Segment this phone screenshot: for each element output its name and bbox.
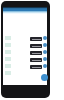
button[interactable]: Compose [41, 74, 48, 81]
button[interactable]: Avatar [43, 57, 47, 61]
button[interactable] [30, 65, 42, 69]
button[interactable]: Avatar [43, 64, 47, 68]
button[interactable]: Avatar [43, 50, 47, 54]
button[interactable]: Avatar [43, 43, 47, 47]
button[interactable] [30, 58, 42, 62]
button[interactable] [30, 51, 42, 55]
button[interactable]: Avatar [43, 36, 47, 40]
button[interactable] [30, 44, 42, 48]
button[interactable] [30, 37, 42, 41]
button[interactable] [3, 7, 47, 14]
